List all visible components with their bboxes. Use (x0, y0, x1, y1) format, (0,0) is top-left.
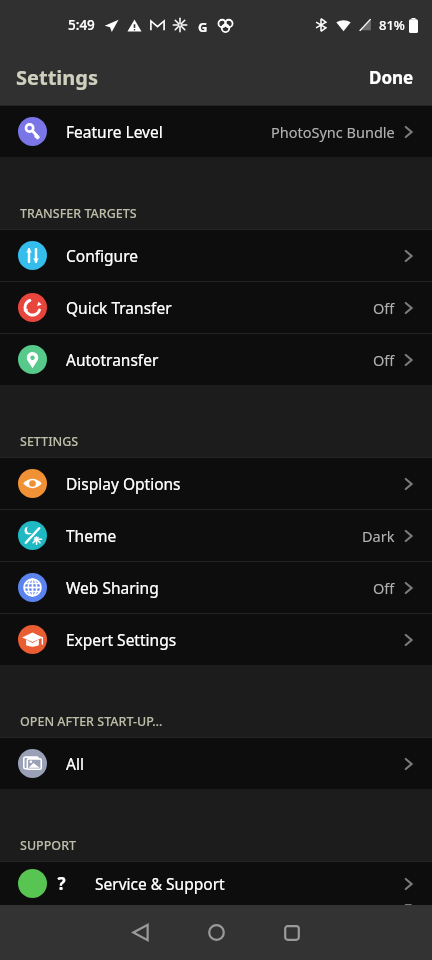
staticText: Off (373, 578, 395, 598)
staticText: Theme (66, 525, 117, 546)
staticText: Display Options (66, 473, 181, 494)
staticText: Web Sharing (66, 577, 159, 598)
staticText: Configure (66, 245, 139, 266)
button[interactable]: Expert Settings (0, 614, 432, 665)
button[interactable]: All (0, 738, 432, 789)
button[interactable]: Home (178, 905, 254, 960)
staticText: Feature Level (66, 121, 163, 142)
button[interactable]: Display Options (0, 458, 432, 509)
staticText: Autotransfer (66, 349, 159, 370)
staticText: PhotoSync Bundle (271, 122, 395, 142)
staticText: TRANSFER TARGETS (20, 205, 137, 222)
staticText: Service & Support (95, 873, 225, 894)
staticText: Off (373, 350, 395, 370)
button[interactable]: Done (351, 56, 432, 99)
staticText: All (66, 753, 84, 774)
button[interactable]: ? (0, 862, 432, 905)
staticText: ? (57, 872, 66, 895)
button[interactable]: Quick Transfer (0, 282, 432, 333)
button[interactable]: Theme (0, 510, 432, 561)
button[interactable]: Autotransfer (0, 334, 432, 385)
staticText: Quick Transfer (66, 297, 172, 318)
staticText: Off (373, 298, 395, 318)
staticText: G (198, 18, 208, 33)
staticText: Done (369, 66, 414, 89)
button[interactable]: Recent apps (254, 905, 330, 960)
button[interactable]: Configure (0, 230, 432, 281)
staticText: Expert Settings (66, 629, 177, 650)
staticText: SETTINGS (20, 433, 79, 450)
staticText: Settings (16, 64, 98, 91)
staticText: 81% (379, 16, 405, 34)
staticText: SUPPORT (20, 837, 77, 854)
staticText: OPEN AFTER START-UP… (20, 713, 163, 730)
staticText: 5:49 (68, 16, 95, 34)
button[interactable]: Back (102, 905, 178, 960)
staticText: Dark (362, 526, 395, 546)
button[interactable]: Web Sharing (0, 562, 432, 613)
button[interactable]: Feature Level (0, 106, 432, 157)
